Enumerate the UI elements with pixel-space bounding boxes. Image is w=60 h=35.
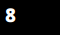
staticText: 8 xyxy=(5,3,16,27)
